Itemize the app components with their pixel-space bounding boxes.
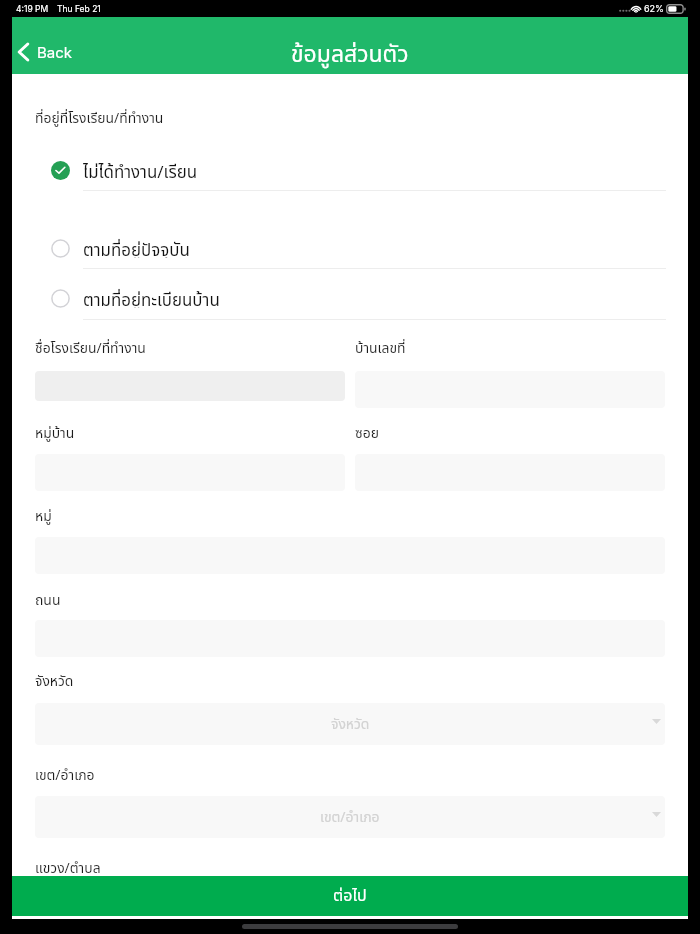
button[interactable]: Back bbox=[15, 42, 73, 62]
staticText: ชื่อโรงเรียน/ที่ทำงาน bbox=[35, 338, 146, 359]
staticText: ตามที่อยู่ปัจจุบัน bbox=[83, 238, 190, 258]
staticText: ข้อมูลส่วนตัว bbox=[291, 38, 409, 73]
staticText: ถนน bbox=[35, 590, 61, 611]
staticText: ไม่ได้ทำงาน/เรียน bbox=[83, 160, 198, 180]
staticText: Back bbox=[37, 43, 73, 61]
staticText: ซอย bbox=[355, 423, 379, 444]
staticText: เขต/อำเภอ bbox=[35, 765, 95, 786]
staticText: ที่อยู่ที่โรงเรียน/ที่ทำงาน bbox=[35, 108, 164, 129]
other: Expand bbox=[652, 719, 661, 724]
staticText: แขวง/ตำบล bbox=[35, 858, 101, 879]
other: Expand bbox=[652, 812, 661, 817]
button[interactable]: เขต/อำเภอ bbox=[35, 796, 665, 838]
staticText: จังหวัด bbox=[331, 714, 370, 735]
staticText: Thu Feb 21 bbox=[57, 4, 101, 14]
staticText: บ้านเลขที่ bbox=[355, 338, 406, 359]
staticText: เขต/อำเภอ bbox=[320, 807, 380, 828]
staticText: หมู่ bbox=[35, 506, 52, 527]
staticText: ต่อไป bbox=[333, 884, 367, 908]
staticText: จังหวัด bbox=[35, 671, 74, 692]
staticText: ตามที่อยู่ทะเบียนบ้าน bbox=[83, 288, 220, 308]
button[interactable]: ตามที่อยู่ปัจจุบัน bbox=[12, 238, 688, 258]
button[interactable]: ต่อไป bbox=[12, 876, 688, 916]
button[interactable]: ตามที่อยู่ทะเบียนบ้าน bbox=[12, 288, 688, 308]
staticText: หมู่บ้าน bbox=[35, 423, 75, 444]
staticText: 62% bbox=[644, 3, 664, 14]
button[interactable]: ไม่ได้ทำงาน/เรียน bbox=[12, 160, 688, 180]
staticText: 4:19 PM bbox=[16, 4, 49, 14]
